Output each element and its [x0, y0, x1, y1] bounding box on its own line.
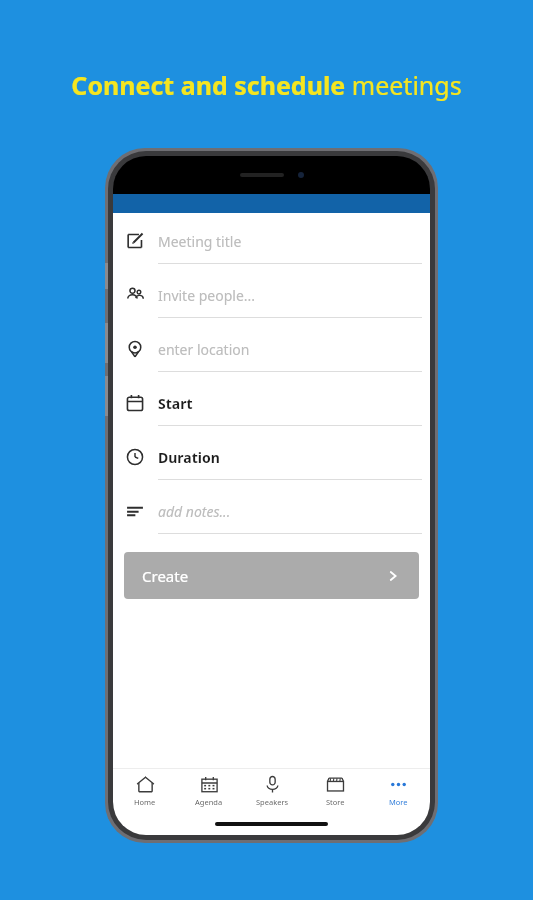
button[interactable]: add notes... — [113, 489, 430, 543]
staticText: Speakers — [256, 797, 289, 807]
button[interactable]: Agenda — [177, 769, 241, 813]
staticText: Connect and schedule meetings — [71, 68, 462, 102]
staticText: More — [389, 797, 408, 807]
staticText: enter location — [158, 340, 250, 359]
staticText: Home — [134, 797, 156, 807]
button[interactable]: Duration — [113, 435, 430, 489]
staticText: Agenda — [195, 797, 223, 807]
staticText: Store — [326, 797, 345, 807]
button[interactable]: Start — [113, 381, 430, 435]
button[interactable]: Meeting title — [113, 219, 430, 273]
button[interactable]: Invite people... — [113, 273, 430, 327]
staticText: Duration — [158, 448, 220, 467]
button[interactable]: Speakers — [241, 769, 304, 813]
button[interactable]: Store — [304, 769, 367, 813]
staticText: Create — [142, 566, 189, 586]
button[interactable]: Create — [124, 552, 419, 599]
staticText: add notes... — [158, 502, 231, 521]
button[interactable]: Home — [113, 769, 177, 813]
staticText: Invite people... — [158, 286, 256, 305]
staticText: Start — [158, 394, 193, 413]
button[interactable]: enter location — [113, 327, 430, 381]
staticText: Meeting title — [158, 232, 242, 251]
button[interactable]: More — [367, 769, 430, 813]
